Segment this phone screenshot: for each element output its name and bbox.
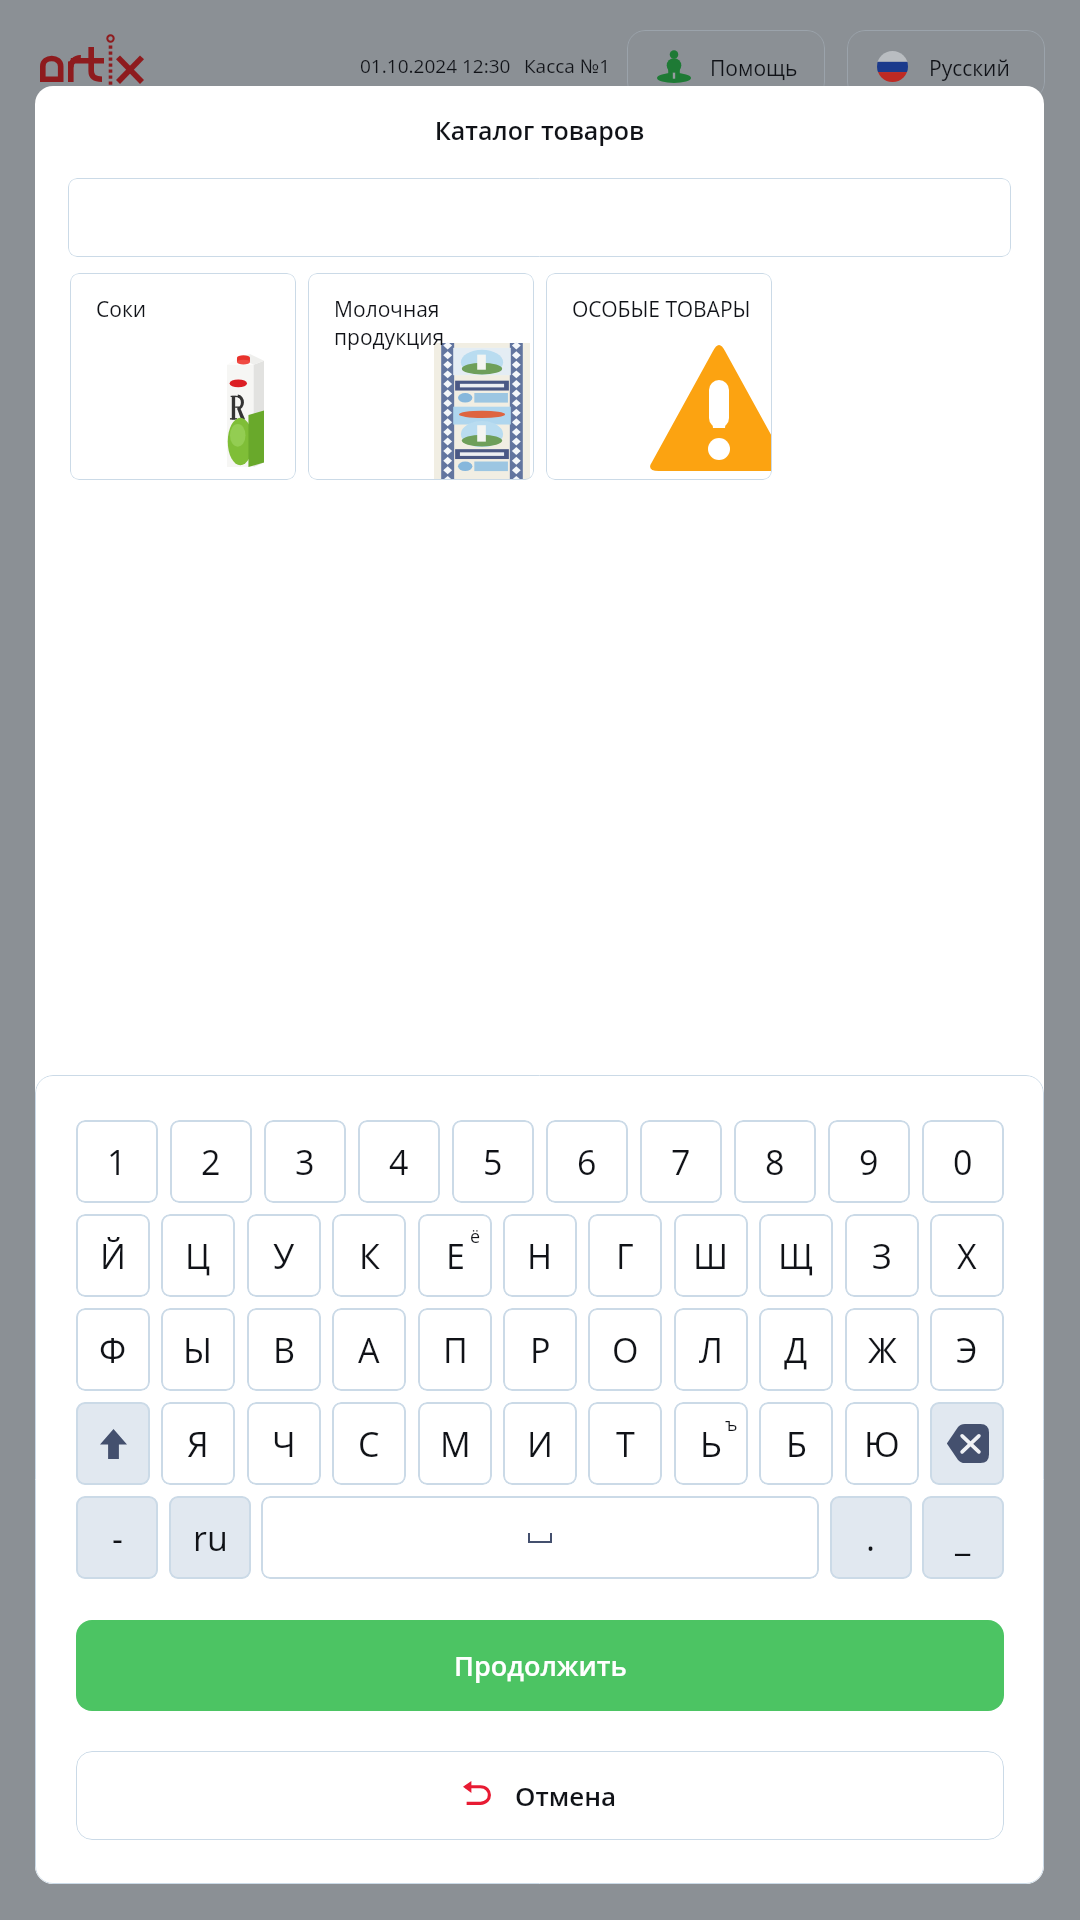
staticText: Продолжить (454, 1647, 627, 1684)
button[interactable]: И (503, 1402, 577, 1485)
button[interactable]: Ш (674, 1214, 748, 1297)
staticText: Ч (272, 1421, 296, 1467)
staticText: 9 (859, 1139, 879, 1185)
button[interactable]: М (418, 1402, 492, 1485)
staticText: К (359, 1233, 380, 1279)
button[interactable]: Ч (247, 1402, 321, 1485)
staticText: Ж (868, 1327, 897, 1373)
staticText: О (612, 1327, 639, 1373)
button[interactable]: 2 (170, 1120, 252, 1203)
button[interactable]: Space (261, 1496, 819, 1579)
button[interactable]: Л (674, 1308, 748, 1391)
staticText: Каталог товаров (35, 113, 1044, 147)
button[interactable]: Р (503, 1308, 577, 1391)
button[interactable]: П (418, 1308, 492, 1391)
staticText: Ш (693, 1233, 729, 1279)
staticText: Л (699, 1327, 723, 1373)
button[interactable]: Х (930, 1214, 1004, 1297)
button[interactable]: Ф (76, 1308, 150, 1391)
staticText: Помощь (710, 54, 798, 83)
staticText: Ф (99, 1327, 127, 1373)
staticText: Э (956, 1327, 978, 1373)
staticText: Русский (929, 54, 1010, 83)
button[interactable]: Г (588, 1214, 662, 1297)
staticText: Соки (96, 295, 147, 324)
button[interactable]: 3 (264, 1120, 346, 1203)
button[interactable]: Н (503, 1214, 577, 1297)
button[interactable]: 6 (546, 1120, 628, 1203)
staticText: 4 (389, 1139, 409, 1185)
staticText: Й (100, 1233, 126, 1279)
button[interactable]: Т (588, 1402, 662, 1485)
button[interactable]: Щ (759, 1214, 833, 1297)
button[interactable]: У (247, 1214, 321, 1297)
staticText: 2 (201, 1139, 221, 1185)
button[interactable]: Ц (161, 1214, 235, 1297)
button[interactable]: Б (759, 1402, 833, 1485)
button[interactable]: В (247, 1308, 321, 1391)
button[interactable]: О (588, 1308, 662, 1391)
staticText: Б (786, 1421, 807, 1467)
staticText: И (527, 1421, 553, 1467)
staticText: Отмена (515, 1778, 617, 1813)
button[interactable]: 8 (734, 1120, 816, 1203)
staticText: С (358, 1421, 380, 1467)
button[interactable]: Ь (674, 1402, 748, 1485)
button[interactable]: Э (930, 1308, 1004, 1391)
staticText: В (273, 1327, 296, 1373)
staticText: М (440, 1421, 471, 1467)
staticText: А (358, 1327, 380, 1373)
button[interactable]: 0 (922, 1120, 1004, 1203)
other: Shift (100, 1429, 127, 1459)
staticText: ё (470, 1224, 481, 1249)
button[interactable]: Отмена (76, 1751, 1004, 1840)
staticText: З (872, 1233, 892, 1279)
button[interactable]: _ (922, 1496, 1004, 1579)
button[interactable]: З (845, 1214, 919, 1297)
staticText: Молочная продукция (334, 295, 445, 351)
staticText: 01.10.2024 12:30 (360, 53, 511, 79)
staticText: 3 (295, 1139, 315, 1185)
button[interactable]: А (332, 1308, 406, 1391)
button[interactable]: - (76, 1496, 158, 1579)
staticText: ru (193, 1515, 228, 1561)
button[interactable]: Я (161, 1402, 235, 1485)
button[interactable]: Е (418, 1214, 492, 1297)
staticText: _ (955, 1515, 971, 1561)
staticText: Ы (183, 1327, 213, 1373)
button[interactable]: 4 (358, 1120, 440, 1203)
staticText: . (866, 1515, 876, 1561)
button[interactable]: ОСОБЫЕ ТОВАРЫ (546, 273, 772, 480)
button[interactable]: Помощь (627, 30, 825, 100)
button[interactable]: Продолжить (76, 1620, 1004, 1711)
button[interactable]: Ы (161, 1308, 235, 1391)
button[interactable]: 5 (452, 1120, 534, 1203)
staticText: 8 (765, 1139, 785, 1185)
staticText: Р (530, 1327, 551, 1373)
button[interactable]: К (332, 1214, 406, 1297)
button[interactable]: Backspace (930, 1402, 1004, 1485)
staticText: Д (784, 1327, 808, 1373)
button[interactable]: 7 (640, 1120, 722, 1203)
button[interactable]: Русский (847, 30, 1045, 100)
button[interactable]: Ж (845, 1308, 919, 1391)
button[interactable]: Соки (70, 273, 296, 480)
button[interactable]: 9 (828, 1120, 910, 1203)
staticText: П (443, 1327, 468, 1373)
button[interactable]: Ю (845, 1402, 919, 1485)
staticText: Я (187, 1421, 209, 1467)
button[interactable]: Молочная продукция (308, 273, 534, 480)
button[interactable]: ru (169, 1496, 251, 1579)
button[interactable]: Й (76, 1214, 150, 1297)
staticText: Т (616, 1421, 635, 1467)
button[interactable]: Shift (76, 1402, 150, 1485)
button[interactable] (68, 178, 1011, 257)
button[interactable]: С (332, 1402, 406, 1485)
staticText: - (112, 1515, 123, 1561)
button[interactable]: 1 (76, 1120, 158, 1203)
staticText: Ь (700, 1421, 722, 1467)
staticText: Х (957, 1233, 977, 1279)
button[interactable]: . (830, 1496, 912, 1579)
button[interactable]: Д (759, 1308, 833, 1391)
staticText: Е (446, 1233, 465, 1279)
